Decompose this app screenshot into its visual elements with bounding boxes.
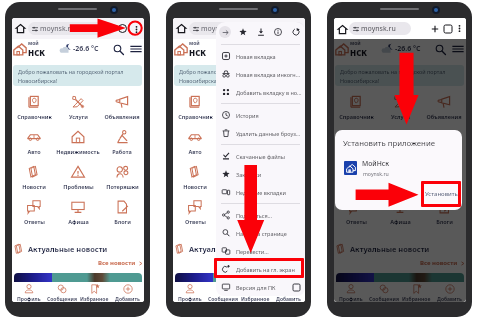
button[interactable]: Профиль [334, 282, 367, 302]
button[interactable]: Home [175, 22, 188, 35]
staticText: Актуальные новости [28, 244, 108, 254]
button[interactable]: Недавние вкладки [216, 183, 305, 201]
button[interactable]: Проблемы [56, 160, 100, 195]
staticText: Новая вкладка инкогн... [236, 71, 301, 78]
button[interactable]: Проблемы [378, 160, 422, 195]
button[interactable]: Объявления [100, 90, 144, 125]
button[interactable]: Tabs [441, 22, 454, 35]
button[interactable]: Все новости [259, 259, 304, 267]
button[interactable]: Search [432, 41, 448, 57]
staticText: moynsk.ru [201, 24, 236, 34]
button[interactable]: Недвижимость [378, 125, 422, 160]
button[interactable]: moynsk.ru [349, 22, 411, 35]
button[interactable]: Новая вкладка [216, 47, 305, 65]
button[interactable]: Закладки [216, 165, 305, 183]
button[interactable]: Menu [129, 42, 143, 56]
button[interactable]: Новости [12, 160, 56, 195]
button[interactable]: Избранное [239, 282, 272, 302]
button[interactable]: Найти на странице [216, 224, 305, 242]
button[interactable]: Справочник [173, 90, 217, 125]
button[interactable]: moynsk.ru [189, 22, 304, 35]
button[interactable]: Услуги [378, 90, 422, 125]
button[interactable]: Перевести... [216, 242, 305, 260]
button[interactable]: Установить [421, 181, 461, 207]
button[interactable]: Блоги [100, 195, 144, 230]
button[interactable]: Forward [219, 26, 231, 38]
button[interactable]: Ответы [334, 195, 378, 230]
button[interactable]: Справочник [334, 90, 378, 125]
button[interactable]: Сообщения [206, 282, 239, 302]
button[interactable]: Page info [272, 26, 284, 38]
button[interactable]: Home [336, 23, 348, 35]
button[interactable]: Потеряшки [422, 160, 466, 195]
button[interactable]: Объявления [261, 90, 305, 125]
button[interactable]: Потеряшки [100, 160, 144, 195]
button[interactable]: Услуги [56, 90, 100, 125]
button[interactable]: Search [271, 41, 287, 57]
button[interactable]: Справочник [12, 90, 56, 125]
button[interactable]: Версия для ПК [216, 278, 305, 296]
staticText: Недвижимость [217, 148, 261, 155]
staticText: Все новости [98, 259, 136, 267]
button[interactable]: Афиша [378, 195, 422, 230]
button[interactable]: Tabs [116, 22, 129, 35]
button[interactable]: Home [14, 22, 27, 35]
button[interactable]: Добавить [272, 282, 305, 302]
button[interactable]: Авто [334, 125, 378, 160]
button[interactable]: Проблемы [217, 160, 261, 195]
button[interactable]: Menu [290, 42, 304, 56]
button[interactable]: Menu [451, 42, 465, 56]
button[interactable]: Объявления [422, 90, 466, 125]
button[interactable]: Сообщения [367, 282, 400, 302]
button[interactable]: Новая вкладка инкогн... [216, 65, 305, 83]
button[interactable]: Добавить [111, 282, 144, 302]
button[interactable]: Reload [290, 26, 302, 38]
button[interactable]: Авто [173, 125, 217, 160]
button[interactable]: Download [255, 26, 267, 38]
button[interactable]: Bookmark [237, 26, 249, 38]
button[interactable]: Все новости [98, 259, 143, 267]
staticText: Ответы [24, 218, 45, 225]
button[interactable]: Удалить данные броуз... [216, 124, 305, 142]
button[interactable]: Новости [173, 160, 217, 195]
button[interactable]: moynsk.ru [28, 22, 115, 35]
button[interactable]: Добавить [433, 282, 466, 302]
button[interactable]: Профиль [12, 282, 45, 302]
staticText: Все новости [259, 259, 297, 267]
button[interactable]: Скачанные файлы [216, 147, 305, 165]
button[interactable]: Афиша [217, 195, 261, 230]
staticText: Поделиться... [236, 212, 273, 219]
button[interactable]: Работа [100, 125, 144, 160]
staticText: Афиша [390, 218, 411, 225]
staticText: Недавние вкладки [236, 189, 286, 196]
button[interactable]: Профиль [173, 282, 206, 302]
button[interactable]: New tab [428, 22, 441, 35]
button[interactable]: Добавить вкладку в но... [216, 83, 305, 101]
staticText: Установить приложение [343, 138, 436, 149]
button[interactable]: Блоги [422, 195, 466, 230]
button[interactable]: Избранное [400, 282, 433, 302]
button[interactable]: Ответы [173, 195, 217, 230]
button[interactable]: Ответы [12, 195, 56, 230]
button[interactable]: Все новости [420, 259, 465, 267]
button[interactable]: Поделиться... [216, 206, 305, 224]
button[interactable]: Недвижимость [56, 125, 100, 160]
button[interactable]: Блоги [261, 195, 305, 230]
button[interactable]: More options [129, 22, 143, 36]
button[interactable]: Работа [261, 125, 305, 160]
button[interactable]: Потеряшки [261, 160, 305, 195]
button[interactable]: История [216, 106, 305, 124]
staticText: Актуальные новости [189, 244, 269, 254]
button[interactable]: Search [110, 41, 126, 57]
staticText: Новости [22, 183, 46, 190]
button[interactable]: Избранное [78, 282, 111, 302]
button[interactable]: Авто [12, 125, 56, 160]
button[interactable]: Работа [422, 125, 466, 160]
button[interactable]: Добавить на гл. экран [216, 260, 305, 278]
button[interactable]: More options [454, 23, 465, 34]
button[interactable]: Недвижимость [217, 125, 261, 160]
button[interactable]: Новости [334, 160, 378, 195]
button[interactable]: Афиша [56, 195, 100, 230]
button[interactable]: Услуги [217, 90, 261, 125]
button[interactable]: Сообщения [45, 282, 78, 302]
